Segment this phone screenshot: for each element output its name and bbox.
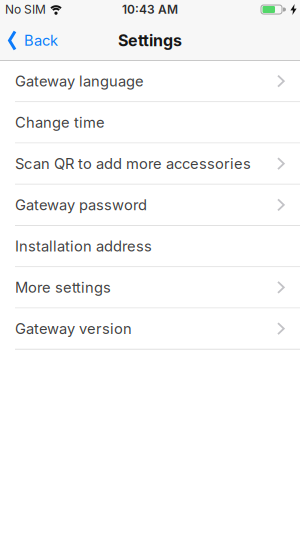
staticText: 10:43 AM [122,2,178,17]
staticText: No SIM [5,2,46,17]
button[interactable]: Installation address [0,226,300,266]
button[interactable]: Gateway version [0,308,300,349]
button[interactable]: More settings [0,267,300,307]
staticText: Back [24,32,58,49]
staticText: More settings [15,279,111,296]
staticText: Gateway version [15,320,132,337]
button[interactable]: Change time [0,102,300,142]
button[interactable]: Gateway password [0,185,300,225]
staticText: Gateway language [15,72,144,90]
staticText: Settings [118,31,182,50]
button[interactable]: Back [0,21,64,60]
staticText: Gateway password [15,196,147,213]
button[interactable]: Scan QR to add more accessories [0,143,300,184]
button[interactable]: Gateway language [0,61,300,101]
staticText: Installation address [15,237,152,255]
staticText: Scan QR to add more accessories [15,155,251,172]
staticText: Change time [15,114,105,131]
